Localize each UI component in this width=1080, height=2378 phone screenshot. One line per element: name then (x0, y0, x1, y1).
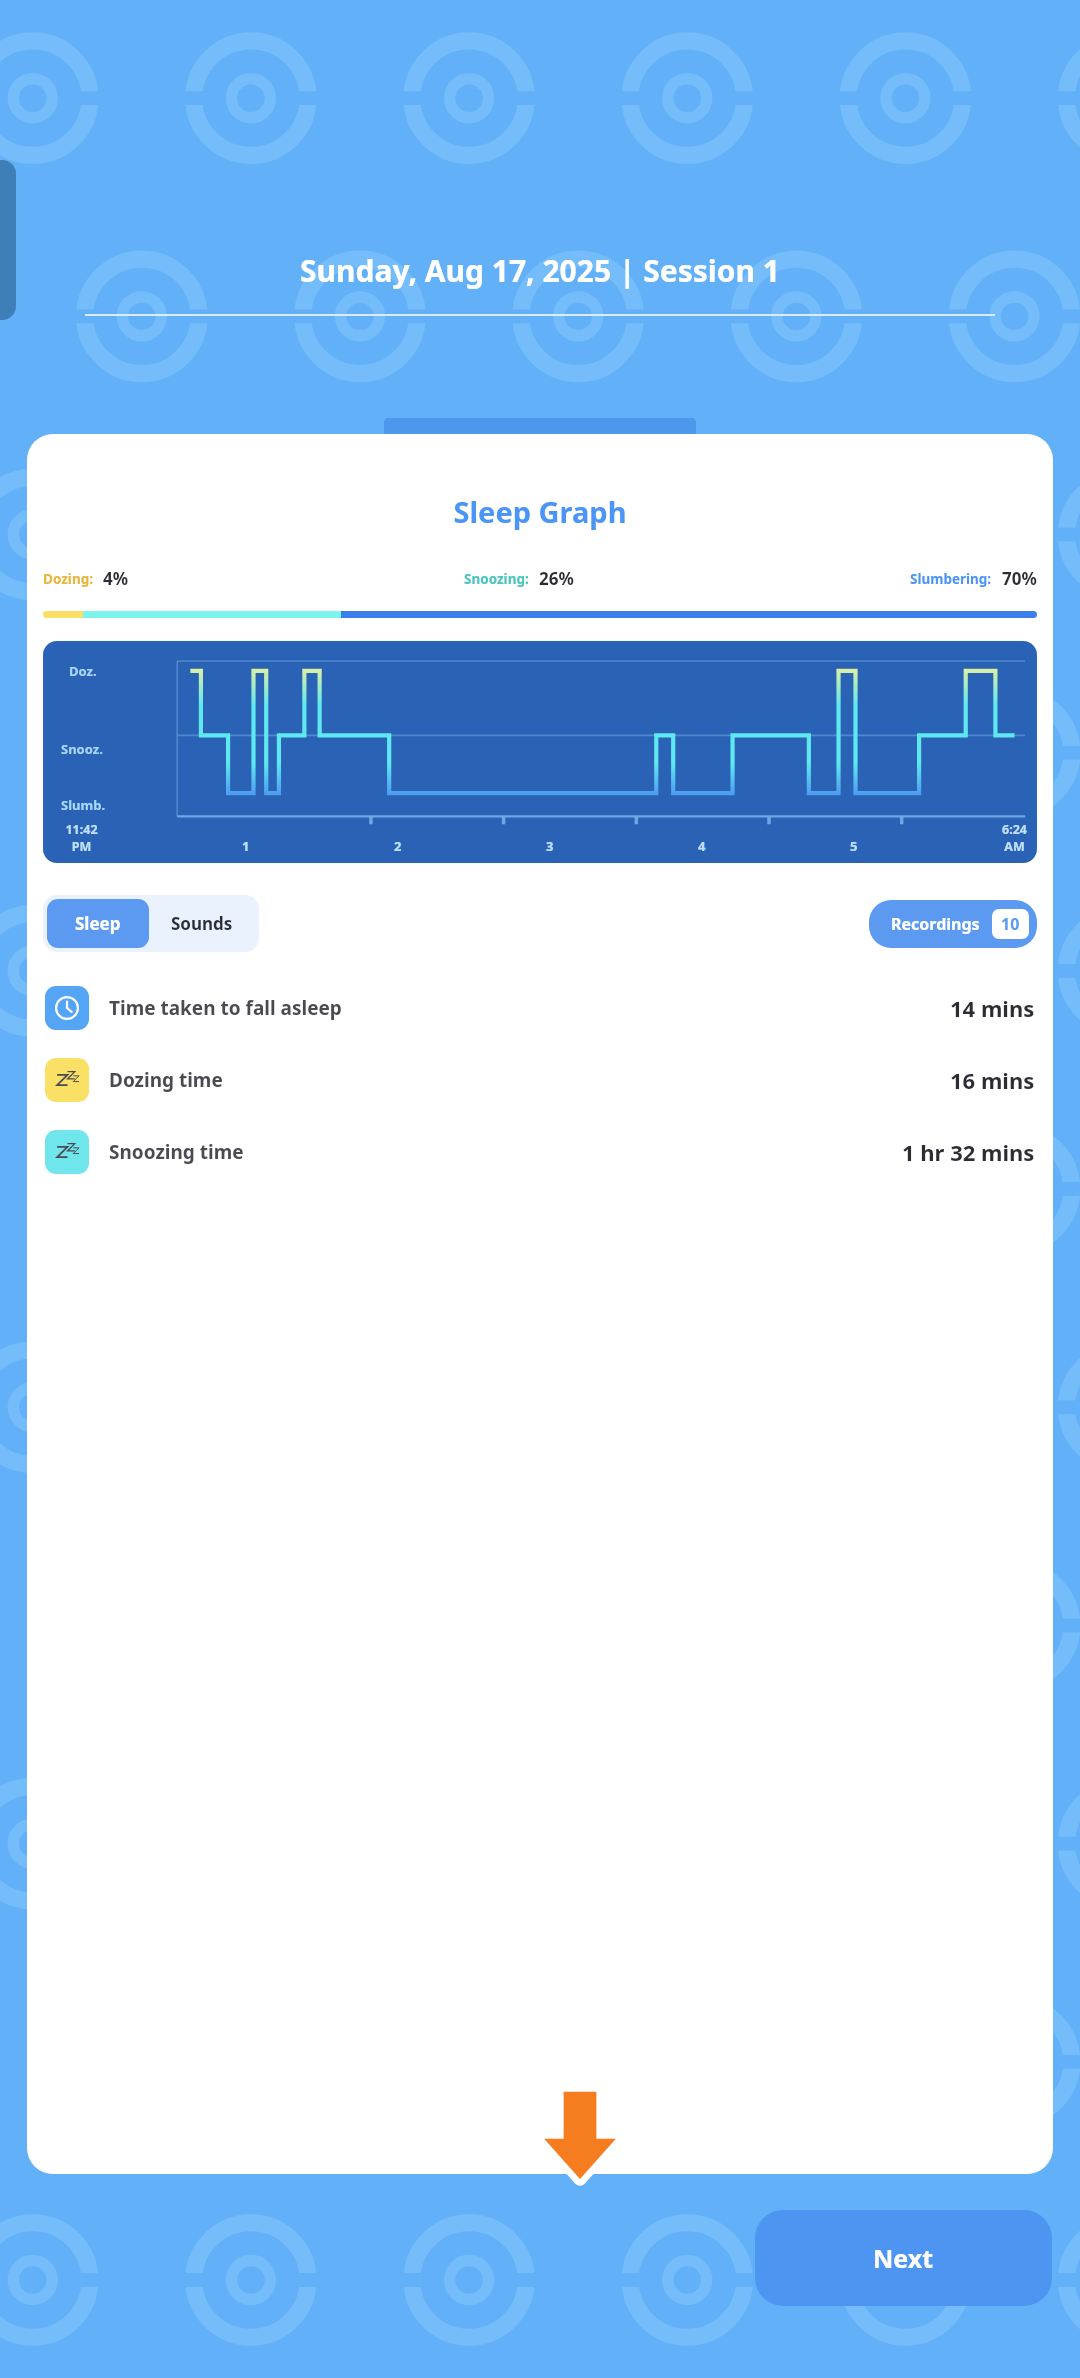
staticText: 5 (850, 837, 858, 855)
staticText: Sounds (171, 912, 233, 935)
staticText: 4% (103, 567, 129, 590)
staticText: 3 (546, 837, 554, 855)
button[interactable]: Scroll down (541, 2086, 619, 2182)
staticText: 16 mins (950, 1065, 1035, 1095)
staticText: Snoozing time (109, 1139, 244, 1165)
button[interactable]: Snoozing time (27, 1124, 1053, 1180)
staticText: Dozing: (43, 570, 93, 588)
staticText: 10 (1001, 913, 1020, 935)
button[interactable]: Sleep (47, 899, 149, 948)
staticText: Sunday, Aug 17, 2025 | Session 1 (0, 250, 1080, 291)
staticText: 11:42 PM (65, 821, 98, 855)
staticText: 4 (698, 837, 706, 855)
button[interactable]: Sounds (149, 899, 255, 948)
staticText: 70% (1002, 567, 1037, 590)
button[interactable]: Time taken to fall asleep (27, 980, 1053, 1036)
staticText: 1 hr 32 mins (902, 1137, 1035, 1167)
staticText: Time taken to fall asleep (109, 995, 342, 1021)
staticText: 2 (394, 837, 402, 855)
staticText: 6:24 AM (1002, 821, 1027, 855)
staticText: Snoozing: (464, 570, 529, 588)
button[interactable]: Dozing time (27, 1052, 1053, 1108)
staticText: Dozing time (109, 1067, 223, 1093)
staticText: Snooz. (61, 740, 103, 758)
staticText: Recordings (891, 913, 980, 935)
staticText: 26% (539, 567, 574, 590)
staticText: Sleep (75, 912, 121, 935)
staticText: Slumb. (61, 796, 106, 814)
staticText: Slumbering: (910, 570, 992, 588)
button[interactable]: Next (755, 2210, 1052, 2306)
staticText: Sleep Graph (27, 492, 1053, 531)
staticText: 1 (242, 837, 250, 855)
staticText: Next (873, 2241, 934, 2275)
staticText: Doz. (69, 662, 97, 680)
button[interactable]: Recordings (869, 900, 1037, 948)
staticText: 14 mins (950, 993, 1035, 1023)
